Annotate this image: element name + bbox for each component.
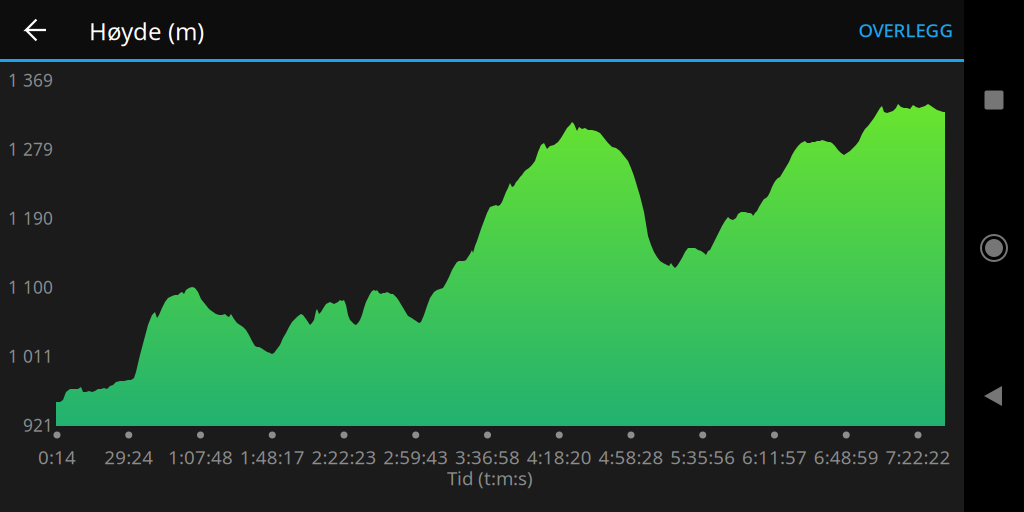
staticText: 2:59:43 (383, 445, 448, 469)
staticText: 2:22:23 (311, 445, 376, 469)
staticText: 29:24 (104, 445, 153, 469)
staticText: 1 369 (8, 68, 53, 91)
staticText: 921 (23, 413, 53, 436)
staticText: 1 190 (8, 206, 53, 229)
staticText: 0:14 (38, 445, 76, 469)
staticText: Høyde (m) (89, 15, 204, 47)
staticText: 4:18:20 (527, 445, 592, 469)
staticText: 1:07:48 (168, 445, 233, 469)
button[interactable]: Recent apps (966, 72, 1021, 127)
button[interactable]: Home (965, 219, 1023, 277)
staticText: OVERLEGG (858, 18, 953, 42)
staticText: 1 100 (8, 275, 53, 298)
staticText: 1:48:17 (240, 445, 305, 469)
button[interactable]: Back (966, 368, 1020, 424)
button[interactable]: Back (7, 0, 65, 61)
staticText: Tid (t:m:s) (447, 466, 533, 490)
staticText: 5:35:56 (670, 445, 735, 469)
staticText: 6:48:59 (814, 445, 879, 469)
staticText: 1 011 (8, 344, 53, 367)
staticText: 1 279 (8, 137, 53, 160)
staticText: 7:22:22 (885, 445, 950, 469)
staticText: 6:11:57 (742, 445, 807, 469)
staticText: 4:58:28 (598, 445, 663, 469)
staticText: 3:36:58 (455, 445, 520, 469)
button[interactable]: OVERLEGG (842, 0, 969, 60)
